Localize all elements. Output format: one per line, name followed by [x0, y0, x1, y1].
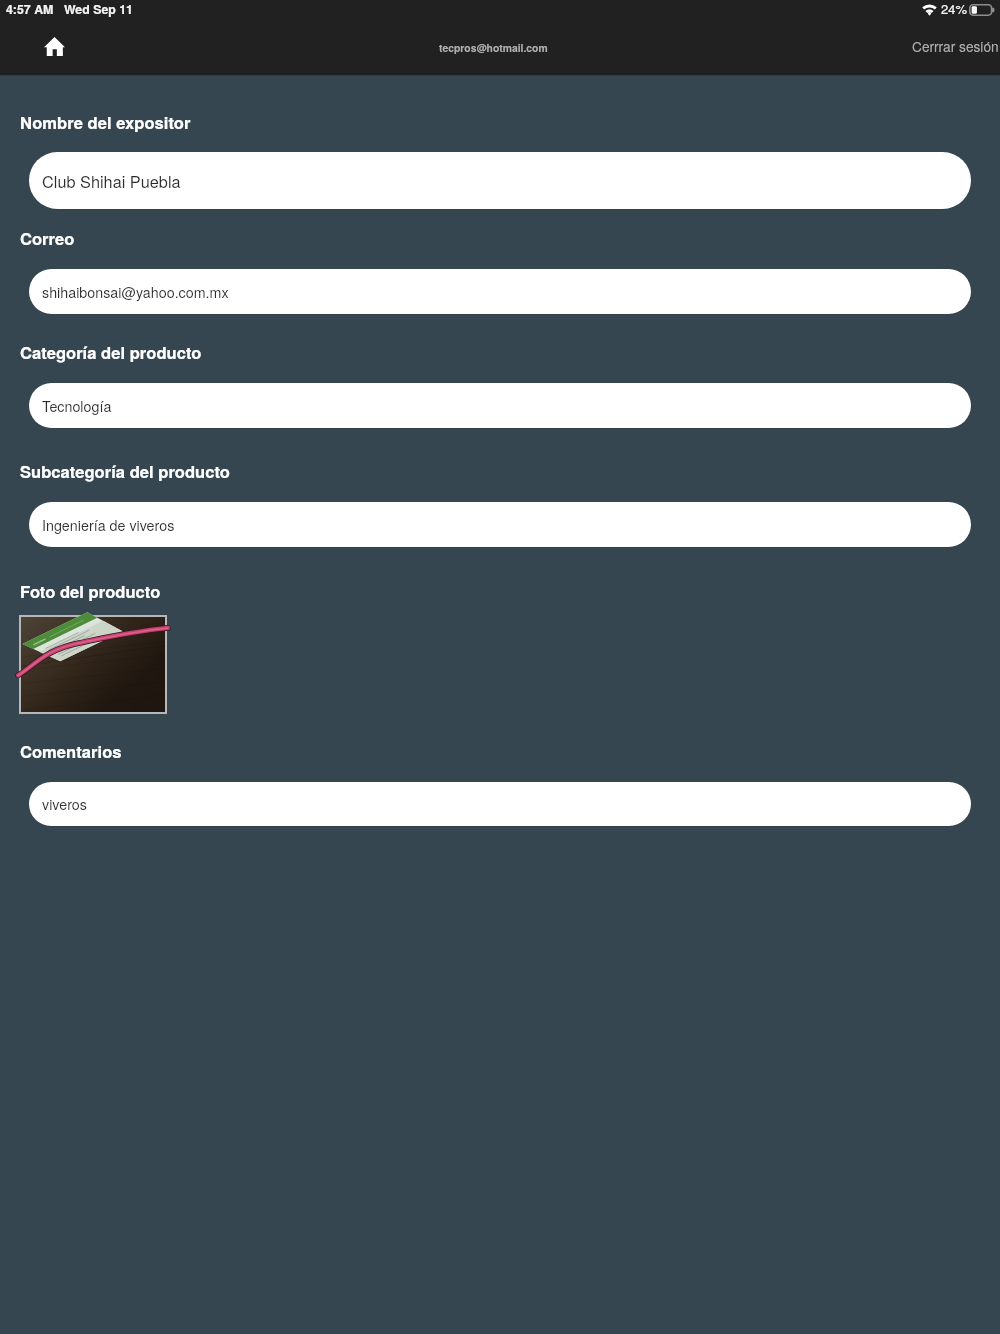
- staticText: Subcategoría del producto: [20, 459, 230, 483]
- staticText: 24%: [941, 0, 968, 18]
- button[interactable]: Club Shihai Puebla: [29, 152, 971, 209]
- staticText: viveros: [42, 794, 87, 814]
- button[interactable]: shihaibonsai@yahoo.com.mx: [29, 269, 971, 314]
- staticText: shihaibonsai@yahoo.com.mx: [42, 282, 229, 302]
- staticText: Cerrrar sesión: [912, 36, 999, 56]
- staticText: tecpros@hotmail.com: [439, 40, 548, 55]
- staticText: Comentarios: [20, 739, 122, 763]
- staticText: Ingeniería de viveros: [42, 515, 175, 535]
- staticText: Foto del producto: [20, 579, 161, 603]
- staticText: Categoría del producto: [20, 340, 202, 364]
- staticText: Club Shihai Puebla: [42, 169, 181, 192]
- button[interactable]: viveros: [29, 782, 971, 826]
- staticText: Tecnología: [42, 396, 112, 416]
- button[interactable]: Ingeniería de viveros: [29, 502, 971, 547]
- button[interactable]: Cerrrar sesión: [907, 30, 1000, 62]
- staticText: Wed Sep 11: [64, 0, 133, 18]
- button[interactable]: Home: [30, 30, 79, 62]
- staticText: 4:57 AM: [6, 0, 54, 18]
- staticText: Correo: [20, 226, 75, 250]
- staticText: Nombre del expositor: [20, 110, 191, 134]
- button[interactable]: Tecnología: [29, 383, 971, 428]
